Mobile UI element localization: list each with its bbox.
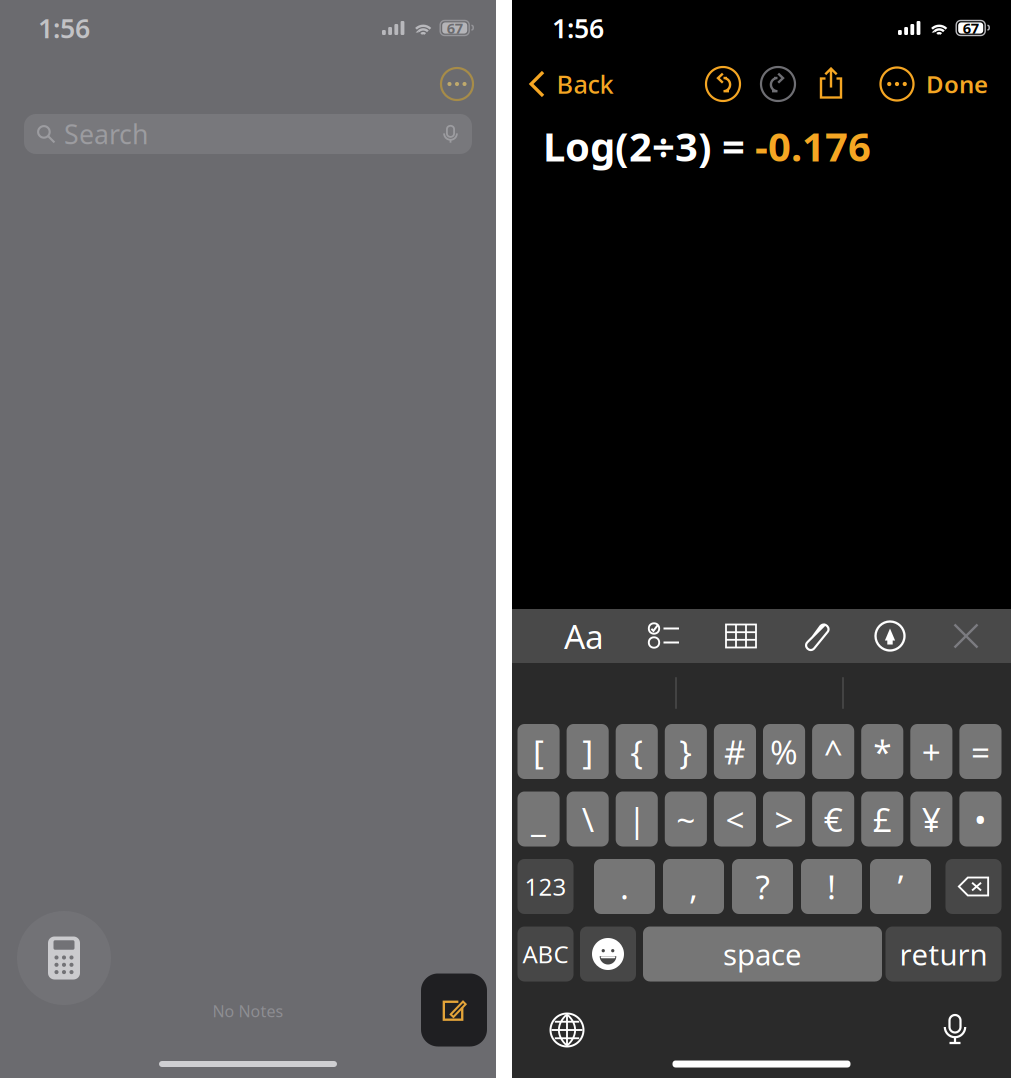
button[interactable]: New note	[421, 973, 487, 1046]
staticText: ,	[689, 864, 698, 909]
button[interactable]: ,	[663, 859, 724, 914]
button[interactable]: ?	[732, 859, 793, 914]
button[interactable]: }	[665, 724, 707, 779]
button[interactable]: €	[812, 791, 854, 846]
button[interactable]: \	[567, 791, 609, 846]
button[interactable]: •	[959, 791, 1001, 846]
button[interactable]: ]	[567, 724, 609, 779]
button[interactable]: 123	[517, 859, 573, 914]
staticText: +	[922, 729, 941, 774]
button[interactable]: +	[910, 724, 952, 779]
staticText: ABC	[522, 938, 568, 970]
button[interactable]: _	[517, 791, 560, 846]
staticText: return	[899, 934, 987, 973]
staticText: ^	[824, 729, 843, 774]
button[interactable]: Checklist	[637, 611, 691, 661]
button[interactable]: Back	[528, 64, 648, 104]
button[interactable]: Switch keyboard	[542, 1005, 592, 1055]
staticText: %	[770, 729, 798, 774]
staticText: Search	[64, 116, 148, 152]
staticText: 1:56	[38, 10, 90, 46]
button[interactable]: .	[594, 859, 655, 914]
button[interactable]: >	[763, 791, 805, 846]
staticText: _	[531, 797, 546, 841]
button[interactable]: Share	[809, 61, 853, 105]
staticText: Aa	[564, 614, 604, 658]
staticText: *	[873, 729, 891, 774]
staticText: !	[827, 864, 836, 909]
button[interactable]: return	[885, 926, 1001, 981]
button[interactable]: {	[616, 724, 658, 779]
staticText: €	[824, 797, 843, 841]
button[interactable]: £	[861, 791, 903, 846]
staticText: Done	[926, 68, 988, 100]
staticText: 67	[963, 18, 979, 38]
staticText: >	[774, 797, 793, 841]
button[interactable]: [	[517, 724, 560, 779]
button[interactable]: *	[861, 724, 903, 779]
button[interactable]: Delete	[945, 859, 1001, 914]
staticText: <	[725, 797, 744, 841]
staticText: \	[582, 797, 594, 841]
button[interactable]: !	[801, 859, 862, 914]
staticText: }	[679, 729, 692, 774]
button[interactable]: ~	[665, 791, 707, 846]
button[interactable]: Attach	[790, 611, 844, 661]
staticText: No Notes	[212, 1000, 283, 1022]
button[interactable]: Dictate	[930, 1004, 980, 1054]
button[interactable]: More options	[435, 62, 479, 106]
staticText: {	[630, 729, 643, 774]
button[interactable]: =	[959, 724, 1001, 779]
staticText: Log(2÷3) =	[543, 119, 755, 172]
button[interactable]: ’	[870, 859, 931, 914]
staticText: #	[724, 729, 746, 774]
staticText: •	[974, 797, 987, 841]
staticText: ]	[582, 729, 593, 774]
staticText: -0.176	[755, 119, 871, 172]
button[interactable]: Table	[714, 611, 768, 661]
staticText: [	[533, 729, 544, 774]
button[interactable]: Format	[557, 611, 611, 661]
staticText: 1:56	[552, 10, 604, 46]
staticText: ?	[755, 864, 769, 909]
button[interactable]: Redo	[756, 62, 800, 106]
button[interactable]: #	[714, 724, 756, 779]
staticText: 67	[447, 18, 463, 38]
staticText: .	[620, 864, 629, 909]
button[interactable]: Undo	[701, 62, 745, 106]
button[interactable]: ABC	[517, 926, 573, 981]
button[interactable]: ^	[812, 724, 854, 779]
staticText: £	[873, 797, 892, 841]
staticText: ’	[897, 864, 903, 909]
button[interactable]: ¥	[910, 791, 952, 846]
staticText: Back	[557, 67, 614, 101]
staticText: =	[971, 729, 990, 774]
button[interactable]: |	[616, 791, 658, 846]
staticText: 123	[524, 871, 566, 902]
staticText: ¥	[922, 797, 941, 841]
button[interactable]: Emoji	[580, 926, 636, 981]
button[interactable]: More options	[875, 62, 919, 106]
button[interactable]: space	[643, 926, 882, 981]
staticText: space	[723, 934, 802, 973]
button[interactable]: %	[763, 724, 805, 779]
staticText: |	[628, 797, 646, 841]
button[interactable]: Search	[24, 114, 472, 154]
staticText: ~	[676, 797, 695, 841]
button[interactable]: Markup	[863, 611, 917, 661]
button[interactable]: Done	[908, 64, 988, 104]
button[interactable]: Close	[939, 611, 993, 661]
button[interactable]: <	[714, 791, 756, 846]
